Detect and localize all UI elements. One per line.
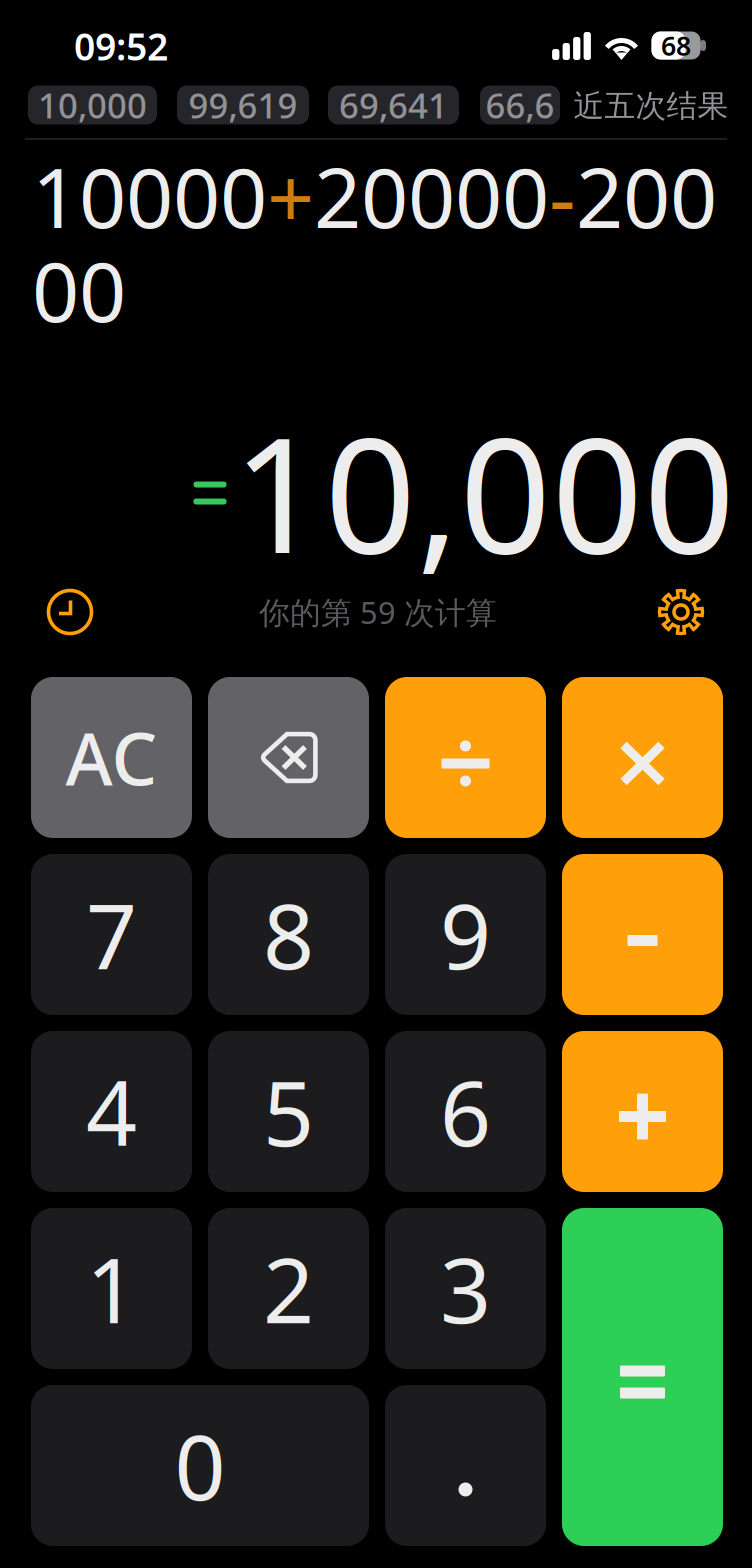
staticText: 3 bbox=[440, 1229, 491, 1348]
staticText: 2 bbox=[263, 1229, 314, 1348]
button[interactable]: Equals bbox=[562, 1208, 723, 1546]
button[interactable]: 2 bbox=[208, 1208, 369, 1369]
button[interactable]: 5 bbox=[208, 1031, 369, 1192]
button[interactable]: Divide bbox=[385, 677, 546, 838]
staticText: 1 bbox=[86, 1229, 137, 1348]
staticText: 9 bbox=[440, 875, 491, 994]
staticText: 66,6 bbox=[485, 82, 554, 128]
staticText: 你的第 59 次计算 bbox=[259, 592, 497, 632]
staticText: 200 bbox=[576, 141, 717, 251]
button[interactable]: Plus bbox=[562, 1031, 723, 1192]
staticText: 09:52 bbox=[74, 21, 168, 71]
button[interactable]: Multiply bbox=[562, 677, 723, 838]
staticText: 7 bbox=[86, 875, 137, 994]
button[interactable]: 3 bbox=[385, 1208, 546, 1369]
button[interactable]: Decimal point bbox=[385, 1385, 546, 1546]
staticText: 5 bbox=[263, 1052, 314, 1171]
button[interactable]: 1 bbox=[31, 1208, 192, 1369]
button[interactable]: 4 bbox=[31, 1031, 192, 1192]
button[interactable]: Settings bbox=[657, 588, 705, 636]
staticText: AC bbox=[65, 710, 157, 805]
button[interactable]: All clear bbox=[31, 677, 192, 838]
button[interactable]: 0 bbox=[31, 1385, 369, 1546]
button[interactable]: 7 bbox=[31, 854, 192, 1015]
button[interactable]: Delete bbox=[208, 677, 369, 838]
staticText: + bbox=[267, 141, 314, 251]
staticText: 10,000 bbox=[38, 82, 147, 128]
staticText: 6 bbox=[440, 1052, 491, 1171]
button[interactable]: Minus bbox=[562, 854, 723, 1015]
staticText: 10,000 bbox=[232, 385, 735, 597]
staticText: 近五次结果 bbox=[573, 87, 728, 125]
staticText: - bbox=[549, 141, 576, 251]
staticText: 8 bbox=[263, 875, 314, 994]
button[interactable]: 8 bbox=[208, 854, 369, 1015]
staticText: 0 bbox=[174, 1406, 225, 1525]
button[interactable]: History bbox=[48, 590, 91, 633]
staticText: 4 bbox=[86, 1052, 137, 1171]
staticText: 69,641 bbox=[339, 82, 448, 128]
button[interactable]: 6 bbox=[385, 1031, 546, 1192]
staticText: 20000 bbox=[314, 141, 549, 251]
staticText: 99,619 bbox=[188, 82, 297, 128]
staticText: 68 bbox=[661, 28, 691, 63]
button[interactable]: 9 bbox=[385, 854, 546, 1015]
staticText: 00 bbox=[32, 235, 126, 345]
staticText: 10000 bbox=[32, 141, 267, 251]
